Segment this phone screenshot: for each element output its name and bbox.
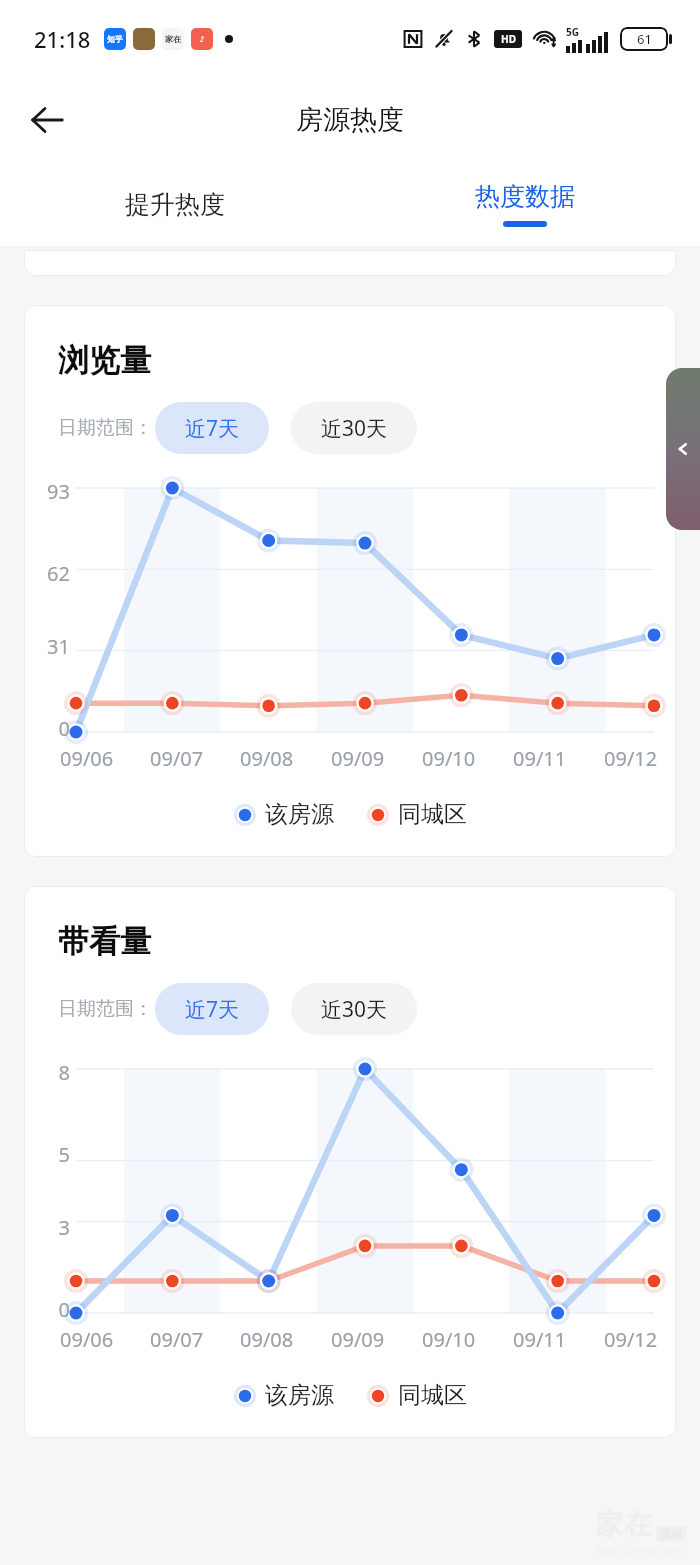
staticText: 近7天 [185,414,240,443]
staticText: 0 [58,715,70,742]
button[interactable]: 热度数据 [350,162,700,246]
staticText: 同城区 [398,1381,467,1410]
staticText: 带看量 [58,922,151,961]
staticText: 31 [47,633,70,660]
button[interactable]: 提升热度 [0,162,350,246]
staticText: 提升热度 [125,189,225,220]
staticText: 09/11 [513,1326,567,1353]
staticText: 09/07 [150,745,204,772]
staticText: 热度数据 [475,181,575,212]
staticText: 09/06 [60,1326,114,1353]
staticText: 近7天 [185,995,240,1024]
staticText: 5 [58,1141,70,1168]
staticText: 09/08 [240,745,294,772]
staticText: 09/08 [240,1326,294,1353]
button[interactable]: 近7天 [155,402,269,454]
staticText: 5G [566,25,579,39]
button[interactable]: 近30天 [291,402,417,454]
staticText: 61 [637,30,652,48]
staticText: 同城区 [398,800,467,829]
staticText: 09/11 [513,745,567,772]
staticText: 8 [58,1059,70,1086]
staticText: 房源热度 [296,103,404,137]
staticText: 该房源 [265,800,334,829]
button[interactable]: 返回 [18,91,76,149]
staticText: 日期范围： [58,997,153,1021]
staticText: 09/10 [422,745,476,772]
staticText: 3 [58,1214,70,1241]
staticText: 该房源 [265,1381,334,1410]
staticText: 09/07 [150,1326,204,1353]
staticText: 日期范围： [58,416,153,440]
staticText: 深圳 [660,1527,682,1541]
staticText: 近30天 [321,995,388,1024]
button[interactable]: 展开侧栏 [666,368,700,530]
staticText: 家在 [596,1507,652,1542]
staticText: 09/09 [331,745,385,772]
staticText: 93 [47,478,70,505]
staticText: 0 [58,1296,70,1323]
staticText: 21:18 [34,24,91,54]
staticText: 09/12 [604,1326,658,1353]
staticText: 09/10 [422,1326,476,1353]
staticText: HD [501,32,516,46]
staticText: 09/06 [60,745,114,772]
staticText: 09/09 [331,1326,385,1353]
button[interactable]: 近30天 [291,983,417,1035]
staticText: 62 [47,560,70,587]
staticText: 家在 [165,34,181,44]
staticText: 浏览量 [58,341,151,380]
button[interactable]: 近7天 [155,983,269,1035]
staticText: 知乎 [107,34,123,44]
staticText: 09/12 [604,745,658,772]
staticText: 近30天 [321,414,388,443]
staticText: ♪ [199,35,205,44]
